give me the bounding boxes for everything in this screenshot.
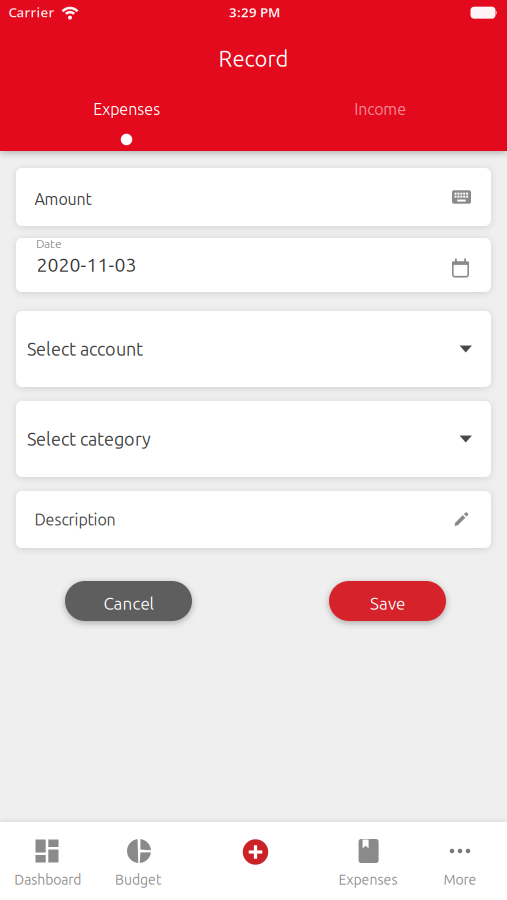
button[interactable]: More xyxy=(425,822,495,892)
staticText: Budget xyxy=(115,872,162,887)
button[interactable]: Select category xyxy=(16,401,491,477)
button[interactable]: Expenses xyxy=(0,91,253,127)
staticText: Cancel xyxy=(103,594,153,613)
staticText: Expenses xyxy=(93,100,160,118)
staticText: Date xyxy=(36,237,62,250)
staticText: 2020-11-03 xyxy=(36,254,136,275)
staticText: More xyxy=(443,872,476,887)
staticText: Save xyxy=(370,594,405,613)
button[interactable]: Description xyxy=(16,491,491,548)
staticText: Select account xyxy=(27,339,143,359)
button[interactable]: Save xyxy=(329,581,446,621)
staticText: Record xyxy=(218,46,288,71)
button[interactable]: Dashboard xyxy=(4,822,90,892)
button[interactable]: Budget xyxy=(99,822,179,892)
button[interactable]: Expenses xyxy=(328,822,408,892)
staticText: Dashboard xyxy=(14,872,81,887)
staticText: Amount xyxy=(34,190,91,208)
staticText: Expenses xyxy=(338,872,397,887)
button[interactable]: Add record xyxy=(225,822,285,882)
staticText: 3:29 PM xyxy=(229,3,280,21)
staticText: Select category xyxy=(27,429,151,449)
staticText: Income xyxy=(354,100,406,118)
button[interactable]: Amount xyxy=(16,168,491,226)
button[interactable]: Date xyxy=(16,238,491,292)
staticText: Description xyxy=(34,510,115,528)
button[interactable]: Income xyxy=(253,91,507,127)
button[interactable]: Cancel xyxy=(65,581,192,621)
button[interactable]: Select account xyxy=(16,311,491,387)
staticText: Carrier xyxy=(8,3,54,21)
